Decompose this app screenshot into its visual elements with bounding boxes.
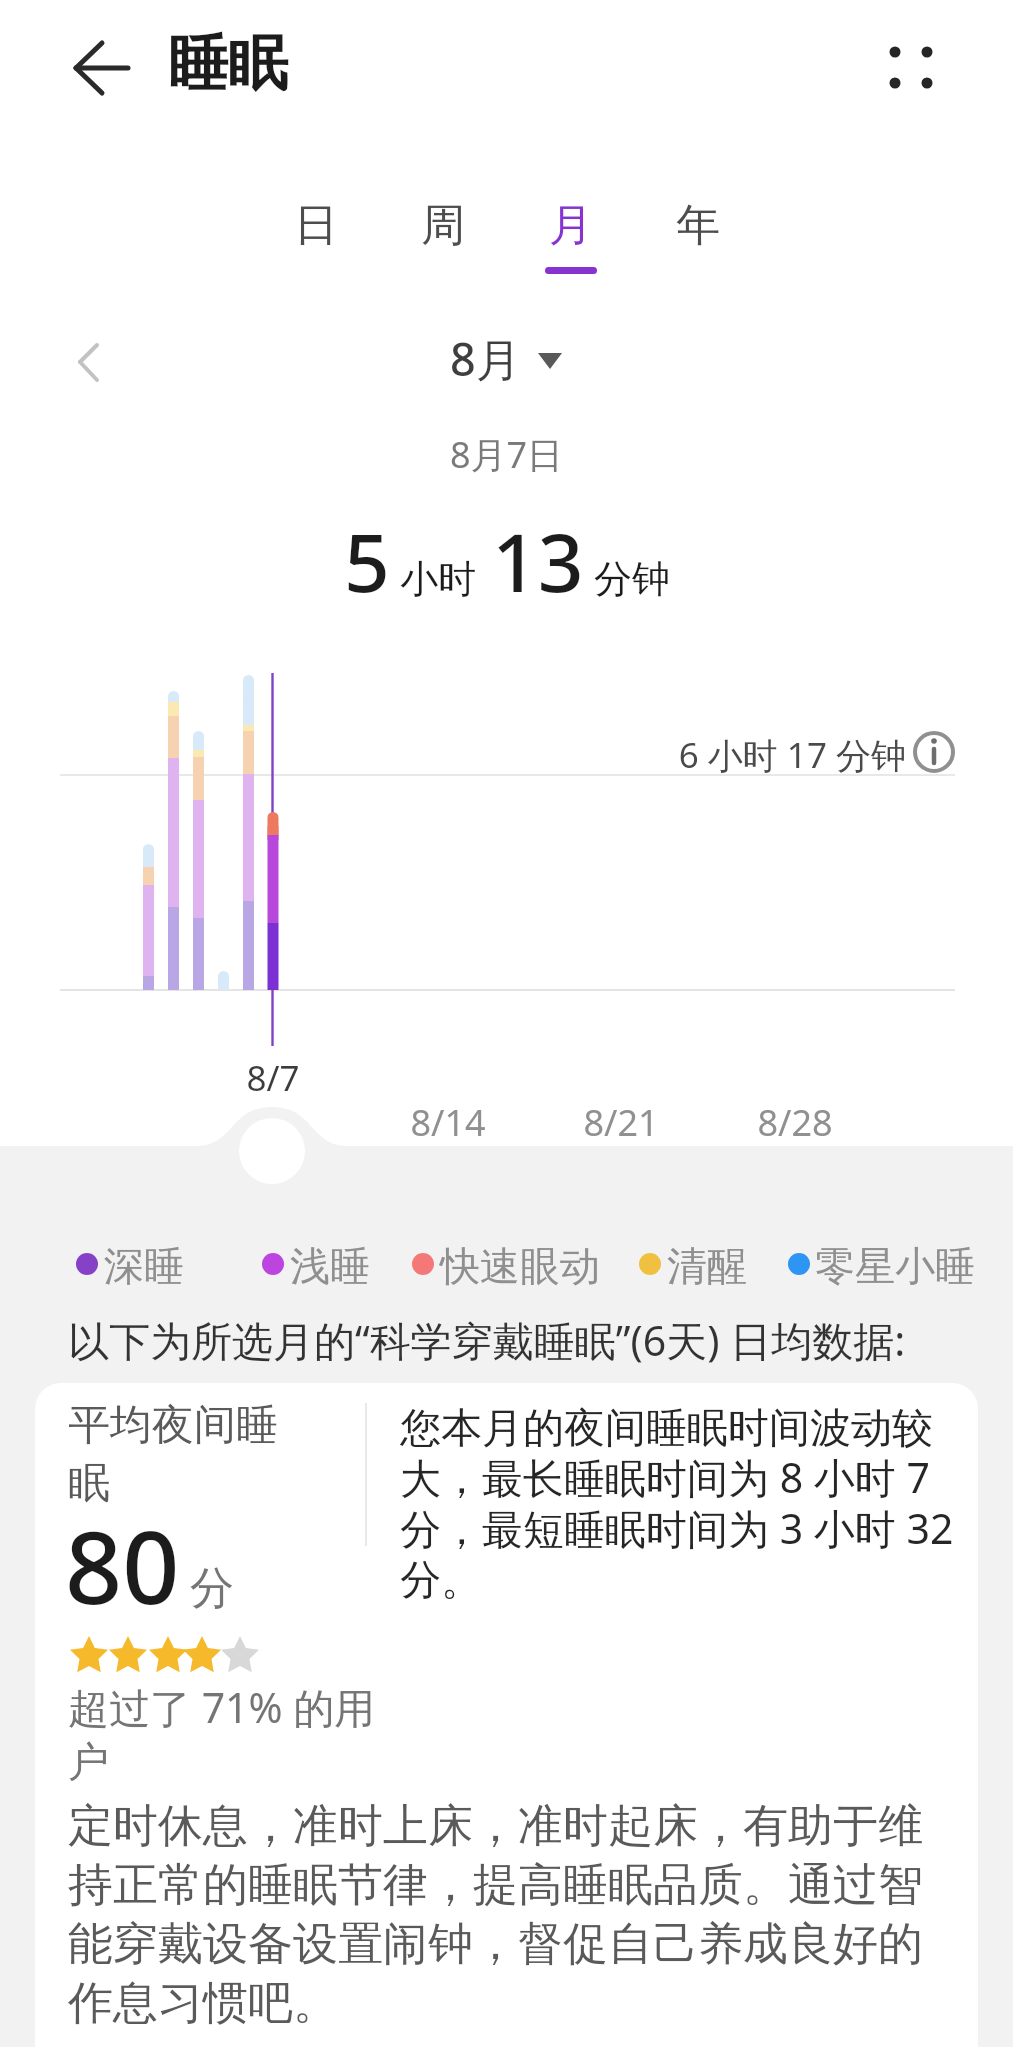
staticText: 6 小时 17 分钟: [400, 731, 906, 779]
staticText: 8月: [450, 328, 521, 389]
button[interactable]: 年: [676, 198, 720, 253]
staticText: 13: [492, 506, 584, 615]
button[interactable]: 日: [294, 198, 338, 253]
button[interactable]: 月: [549, 198, 593, 253]
staticText: 睡眠: [168, 26, 288, 102]
button[interactable]: [60, 30, 140, 106]
staticText: 定时休息，准时上床，准时起床，有助于维持正常的睡眠节律，提高睡眠品质。通过智能穿…: [68, 1798, 948, 2031]
staticText: 8/7: [240, 1054, 306, 1102]
staticText: 浅睡: [290, 1241, 370, 1291]
staticText: 清醒: [667, 1241, 747, 1291]
staticText: 80: [65, 1497, 180, 1633]
staticText: 快速眼动: [440, 1241, 600, 1291]
button[interactable]: 周: [421, 198, 465, 253]
staticText: 8月7日: [0, 430, 1013, 479]
staticText: 分钟: [594, 555, 670, 603]
staticText: 零星小睡: [815, 1241, 975, 1291]
staticText: 8/28: [752, 1098, 838, 1147]
staticText: 8/14: [405, 1098, 491, 1147]
staticText: 以下为所选月的“科学穿戴睡眠”(6天) 日均数据:: [68, 1312, 906, 1368]
staticText: 深睡: [104, 1241, 184, 1291]
staticText: 超过了 71% 的用户: [68, 1679, 398, 1788]
staticText: 小时: [400, 555, 476, 603]
staticText: 5: [344, 506, 390, 615]
button[interactable]: [870, 30, 954, 100]
staticText: 分: [190, 1561, 234, 1616]
staticText: 8/21: [578, 1098, 664, 1147]
staticText: 平均夜间睡眠: [68, 1399, 303, 1509]
button[interactable]: 8月: [450, 328, 521, 389]
staticText: 您本月的夜间睡眠时间波动较 大，最长睡眠时间为 8 小时 7 分，最短睡眠时间为…: [400, 1403, 960, 1606]
